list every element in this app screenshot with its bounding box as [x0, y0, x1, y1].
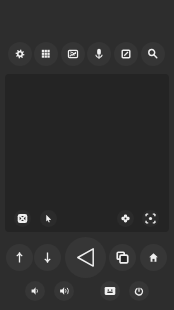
button[interactable]: D-pad — [117, 210, 134, 227]
button[interactable]: Volume up — [54, 281, 74, 301]
button[interactable]: Apps — [34, 42, 58, 66]
button[interactable]: Back — [65, 237, 106, 278]
button[interactable]: Screenshot — [114, 42, 138, 66]
button[interactable]: Pointer — [40, 210, 57, 227]
button[interactable]: Recents — [109, 244, 136, 271]
button[interactable]: Volume down — [25, 281, 45, 301]
button[interactable]: Microphone — [87, 42, 111, 66]
button[interactable]: Power — [129, 281, 149, 301]
button[interactable]: Center focus — [142, 210, 159, 227]
button[interactable]: Home — [140, 244, 167, 271]
button[interactable]: Keyboard — [100, 281, 120, 301]
button[interactable]: Scroll up — [6, 244, 33, 271]
button[interactable]: Search — [141, 42, 165, 66]
button[interactable]: Settings — [8, 42, 32, 66]
button[interactable]: Scroll down — [34, 244, 61, 271]
button[interactable]: Cast screen — [61, 42, 85, 66]
button[interactable]: Resize screen — [14, 210, 31, 227]
